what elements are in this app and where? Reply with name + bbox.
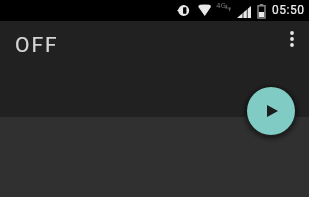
- button[interactable]: Play: [247, 87, 295, 135]
- staticText: 4G: [216, 1, 226, 10]
- staticText: 05:50: [272, 3, 305, 17]
- staticText: OFF: [15, 33, 59, 58]
- button[interactable]: More options: [277, 24, 307, 54]
